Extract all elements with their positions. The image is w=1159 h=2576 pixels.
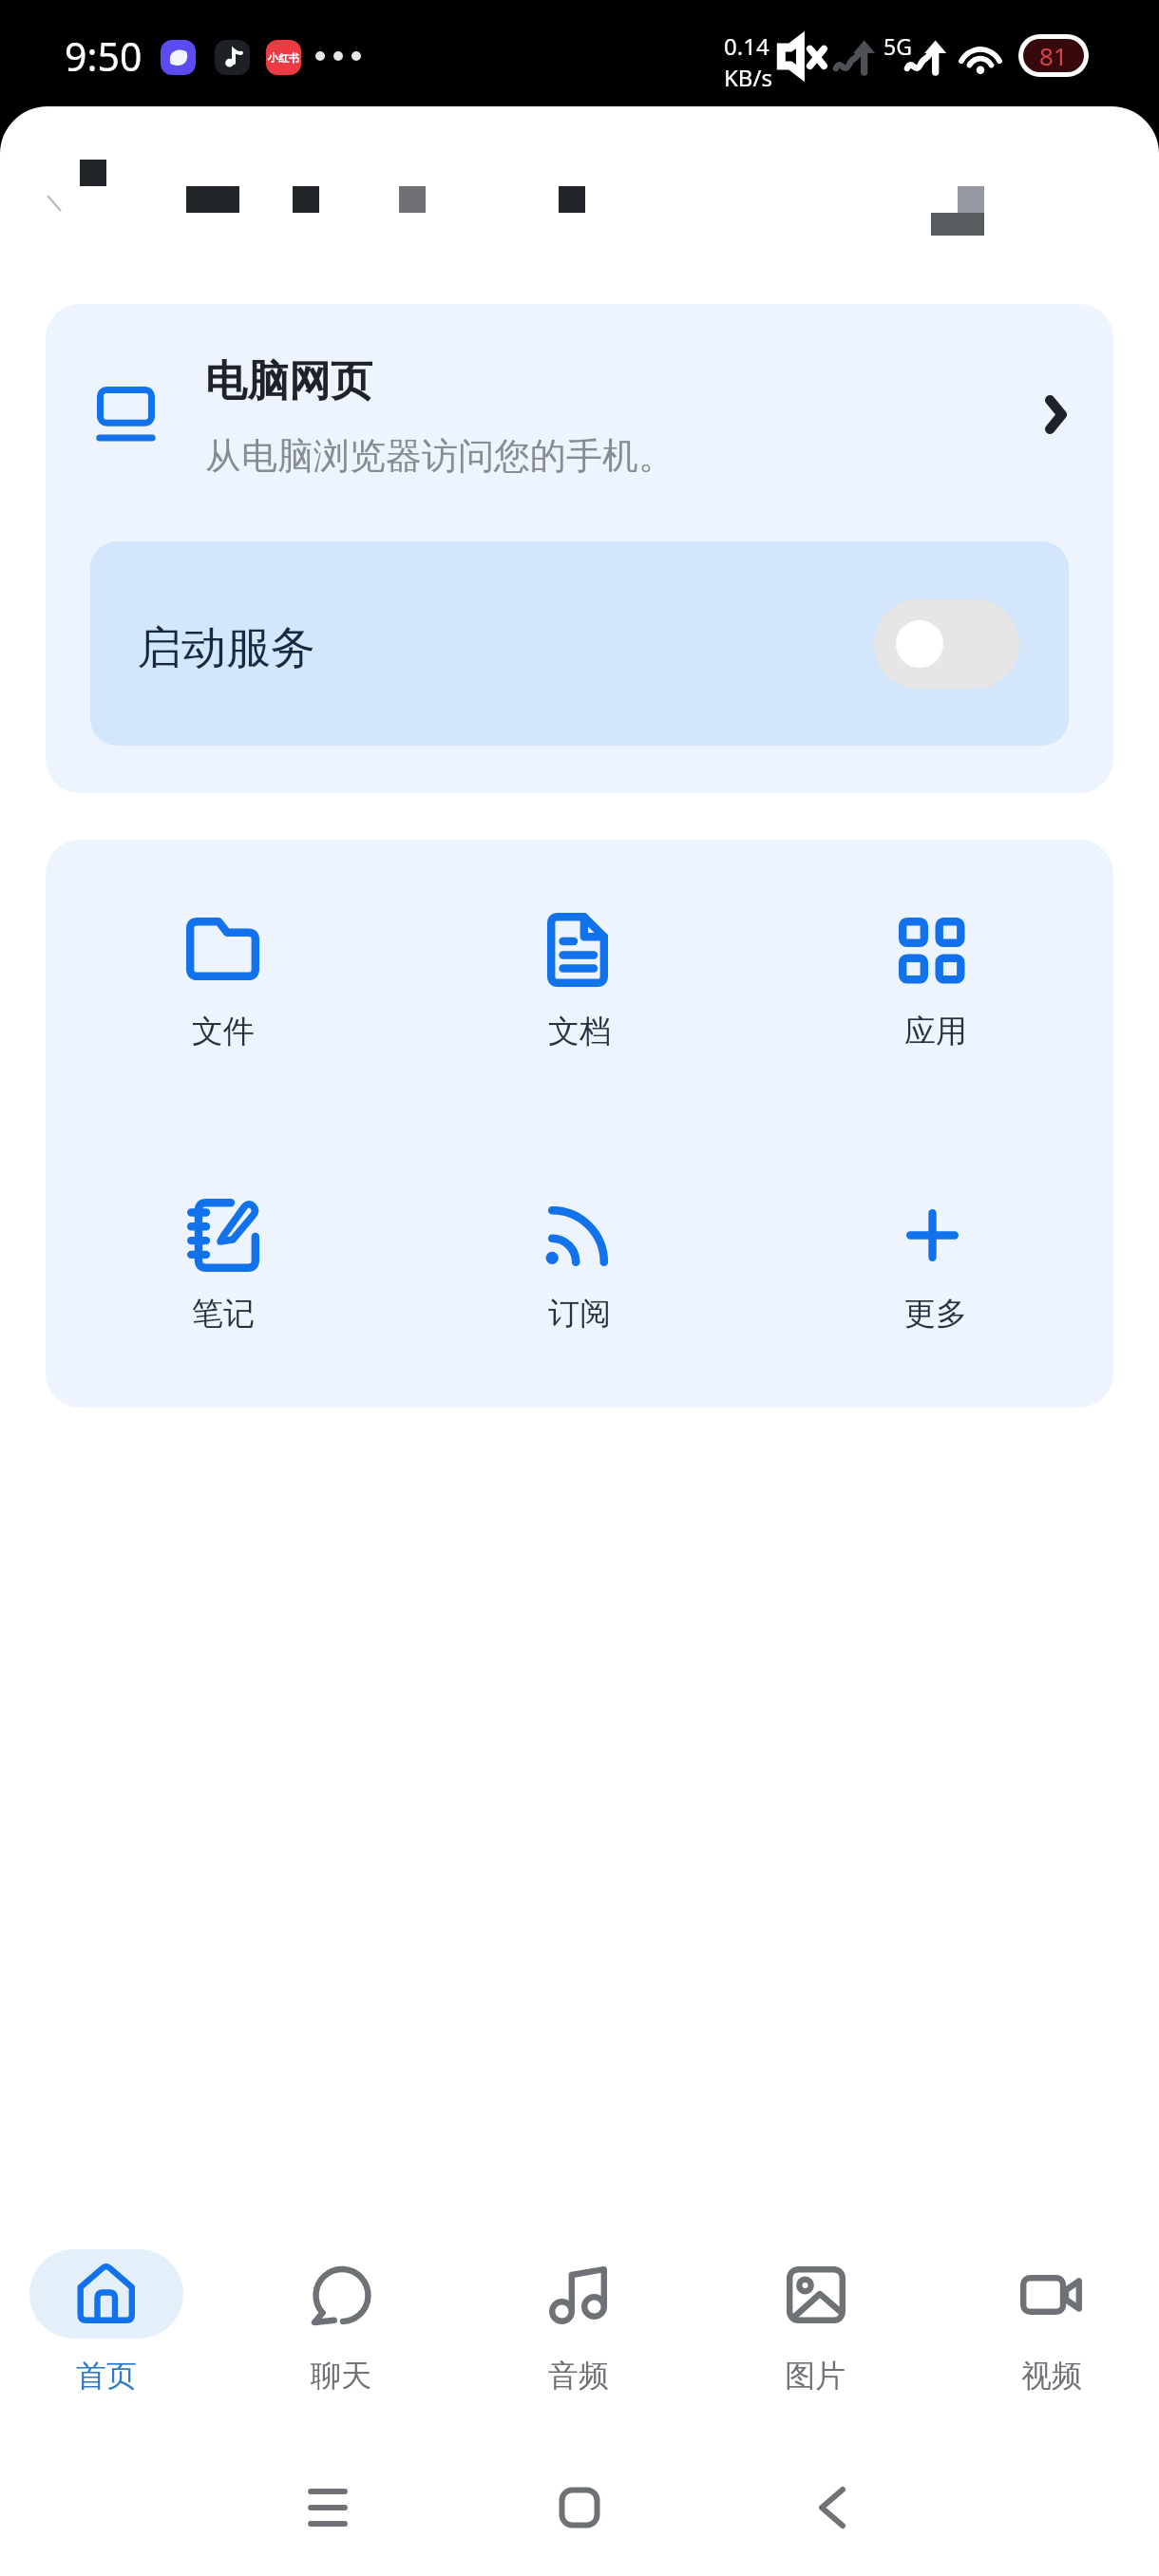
staticText: 电脑网页 [205, 355, 372, 407]
staticText: 5G [883, 31, 912, 61]
staticText: 聊天 [237, 2357, 446, 2395]
staticText: 更多 [793, 1294, 1078, 1334]
button[interactable]: 订阅 [437, 1150, 722, 1350]
staticText: 图片 [711, 2357, 920, 2395]
button[interactable]: 启动服务 [90, 541, 1069, 746]
button[interactable]: 图片 [711, 2238, 920, 2409]
button[interactable]: 文件 [81, 868, 366, 1068]
staticText: 应用 [793, 1012, 1078, 1051]
staticText: 音频 [474, 2357, 683, 2395]
staticText: KB/s [724, 62, 772, 93]
staticText: 视频 [947, 2357, 1156, 2395]
button[interactable]: 文档 [437, 868, 722, 1068]
button[interactable]: 更多 [793, 1150, 1078, 1350]
staticText: 启动服务 [137, 620, 315, 676]
button[interactable]: 视频 [947, 2238, 1156, 2409]
button[interactable]: 笔记 [81, 1150, 366, 1350]
staticText: 从电脑浏览器访问您的手机。 [205, 433, 674, 479]
button[interactable]: 首页 [2, 2238, 211, 2409]
staticText: 0.14 [724, 30, 769, 62]
staticText: 81 [1039, 39, 1068, 72]
staticText: 订阅 [437, 1294, 722, 1334]
staticText: 小红书 [268, 51, 299, 65]
button[interactable]: 音频 [474, 2238, 683, 2409]
button[interactable]: Home [522, 2460, 637, 2555]
staticText: 文件 [81, 1012, 366, 1051]
staticText: 文档 [437, 1012, 722, 1051]
staticText: 9:50 [65, 29, 142, 83]
staticText: 笔记 [81, 1294, 366, 1334]
button[interactable]: Recent apps [270, 2460, 386, 2555]
button[interactable]: 聊天 [237, 2238, 446, 2409]
button[interactable]: 应用 [793, 868, 1078, 1068]
staticText: 首页 [2, 2357, 211, 2395]
button[interactable]: 电脑网页 [46, 304, 1113, 541]
button[interactable]: Back [774, 2460, 890, 2555]
